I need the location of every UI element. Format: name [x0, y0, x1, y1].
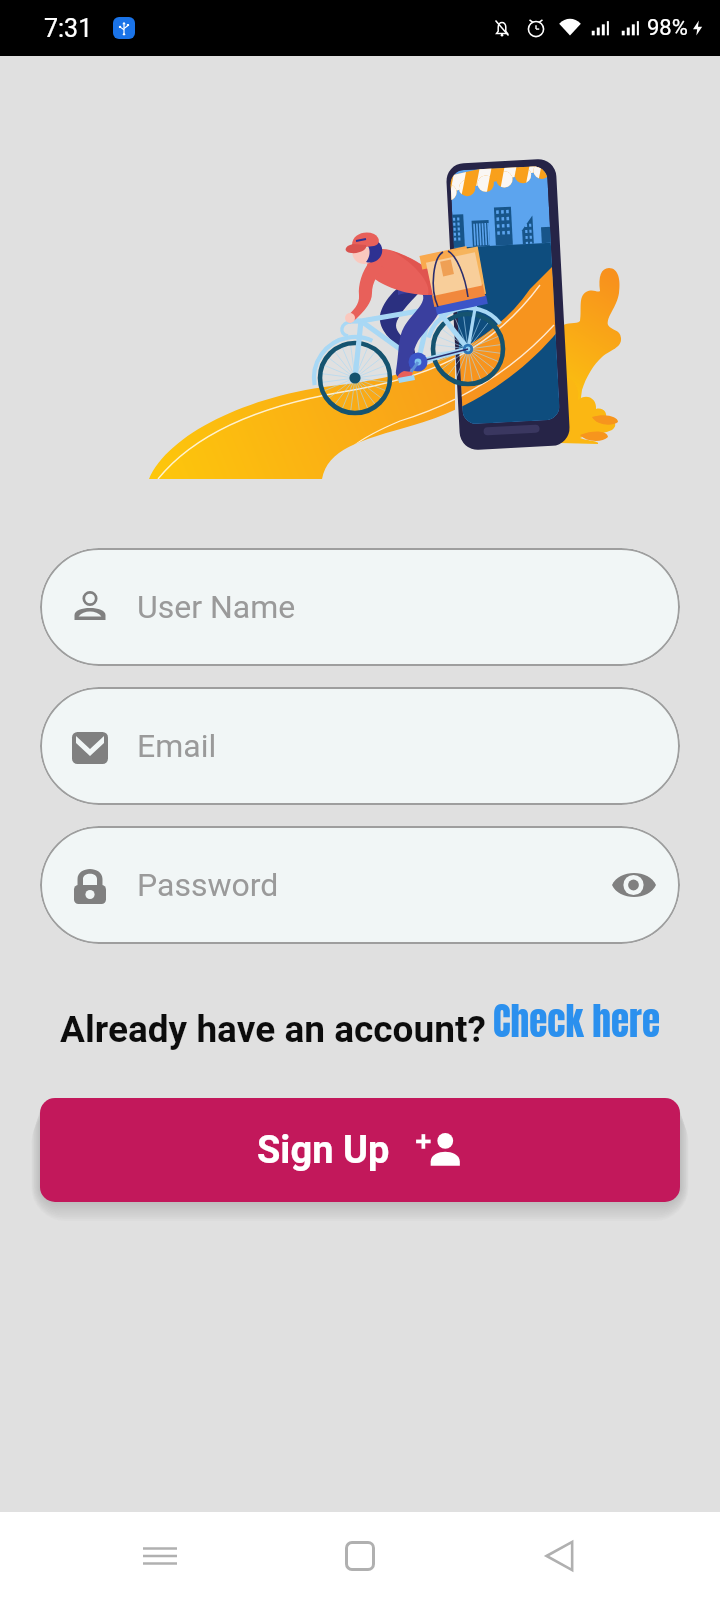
staticText: 98% [647, 15, 688, 41]
staticText: 7:31 [44, 14, 93, 43]
staticText: Email [137, 727, 217, 765]
staticText: Sign Up [257, 1128, 390, 1173]
button[interactable]: Back [520, 1516, 600, 1596]
staticText: Password [137, 866, 279, 904]
staticText: User Name [137, 588, 296, 626]
button[interactable]: User Name [40, 548, 680, 666]
button[interactable]: Show password [601, 852, 667, 918]
button[interactable]: Check here [493, 993, 660, 1051]
button[interactable]: Home [320, 1516, 400, 1596]
button[interactable]: Recents [120, 1516, 200, 1596]
button[interactable]: Sign Up [40, 1098, 680, 1202]
button[interactable]: Email [40, 687, 680, 805]
button[interactable]: Password [40, 826, 680, 944]
staticText: Already have an account? [60, 1008, 486, 1051]
staticText: Check here [493, 993, 660, 1049]
